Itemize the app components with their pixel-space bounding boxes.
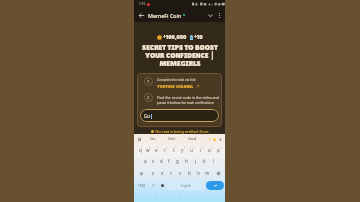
staticText: h — [185, 158, 188, 164]
staticText: e — [155, 147, 158, 153]
button[interactable]: Comma — [149, 181, 157, 190]
button[interactable]: l — [209, 155, 218, 167]
staticText: n — [197, 170, 200, 176]
staticText: MemeFi Coin — [148, 12, 182, 19]
staticText: 1 — [147, 79, 150, 84]
button[interactable]: English — [167, 181, 205, 190]
staticText: Go — [144, 113, 151, 119]
staticText: 6 — [184, 145, 186, 148]
button[interactable]: Go — [149, 135, 157, 143]
button[interactable]: p — [214, 144, 223, 155]
button[interactable]: t — [169, 144, 178, 155]
staticText: z — [152, 170, 155, 176]
button[interactable]: Voice input — [207, 137, 211, 141]
staticText: u — [190, 147, 193, 153]
staticText: 3 — [157, 145, 159, 148]
staticText: 8 — [202, 145, 204, 148]
button[interactable]: Expand — [206, 11, 215, 20]
button[interactable]: Emoji — [158, 181, 166, 190]
staticText: 2 — [147, 95, 150, 100]
button[interactable]: Recents — [152, 194, 159, 201]
staticText: SECRET TIPS TO BOOST YOUR CONFIDENCE | M… — [142, 43, 218, 68]
button[interactable]: k — [200, 155, 209, 167]
button[interactable]: Shift — [135, 167, 148, 179]
staticText: o — [208, 147, 211, 153]
staticText: 5 — [175, 145, 177, 148]
staticText: 4 — [166, 145, 168, 148]
button[interactable]: Backspace — [212, 167, 224, 179]
staticText: w — [146, 147, 150, 153]
staticText: 9 — [211, 145, 213, 148]
button[interactable]: m — [203, 167, 212, 179]
button[interactable]: f — [165, 155, 173, 167]
button[interactable]: h — [182, 155, 191, 167]
button[interactable]: d — [157, 155, 165, 167]
staticText: x — [161, 170, 164, 176]
staticText: j — [195, 158, 197, 164]
staticText: English — [181, 184, 192, 188]
button[interactable]: z — [148, 167, 158, 179]
staticText: 0 — [220, 145, 222, 148]
button[interactable]: j — [191, 155, 200, 167]
button[interactable]: c — [167, 167, 176, 179]
staticText: Go — [150, 136, 156, 142]
button[interactable]: g — [173, 155, 182, 167]
staticText: a — [144, 158, 147, 164]
staticText: v — [179, 170, 182, 176]
staticText: i — [200, 147, 202, 153]
button[interactable]: i — [196, 144, 205, 155]
staticText: s — [152, 158, 155, 164]
button[interactable]: Collapse keyboard — [218, 137, 222, 141]
button[interactable]: w — [144, 144, 152, 155]
button[interactable]: Home — [176, 194, 183, 201]
staticText: 2 — [149, 145, 151, 148]
button[interactable]: u — [187, 144, 196, 155]
button[interactable]: God — [187, 135, 198, 143]
staticText: m — [205, 170, 210, 176]
staticText: g — [176, 158, 179, 164]
staticText: +10 — [194, 34, 203, 40]
button[interactable]: Symbols — [135, 181, 148, 190]
button[interactable]: q — [136, 144, 144, 155]
staticText: 7 — [193, 145, 195, 148]
staticText: b — [188, 170, 191, 176]
button[interactable]: b — [185, 167, 194, 179]
button[interactable]: e — [152, 144, 160, 155]
button[interactable]: Go — [140, 109, 219, 122]
staticText: +100,000 — [163, 34, 187, 40]
button[interactable]: Got — [167, 135, 177, 143]
staticText: Find the secret code in the video and pa… — [157, 95, 219, 105]
button[interactable]: n — [194, 167, 203, 179]
button[interactable]: x — [158, 167, 167, 179]
staticText: y — [181, 147, 184, 153]
button[interactable]: v — [176, 167, 185, 179]
staticText: c — [170, 170, 173, 176]
staticText: d — [160, 158, 163, 164]
staticText: t — [173, 147, 175, 153]
button[interactable]: YOUTUBE CHANNEL — [157, 84, 199, 89]
button[interactable]: More options — [215, 11, 223, 19]
button[interactable]: s — [149, 155, 157, 167]
button[interactable]: o — [205, 144, 214, 155]
staticText: Got — [168, 136, 176, 142]
button[interactable]: r — [160, 144, 169, 155]
button[interactable]: Back — [201, 194, 208, 201]
staticText: f — [168, 158, 170, 164]
staticText: r — [164, 147, 166, 153]
button[interactable]: Enter — [206, 181, 224, 190]
staticText: God — [188, 136, 197, 142]
staticText: l — [213, 158, 215, 164]
staticText: 1 — [141, 145, 143, 148]
button[interactable]: a — [141, 155, 149, 167]
staticText: The task is being verified. Once — [155, 129, 209, 134]
staticText: Complete the task via link — [157, 78, 196, 82]
staticText: ?123 — [138, 184, 145, 188]
button[interactable]: Back — [137, 11, 146, 20]
staticText: q — [139, 147, 142, 153]
button[interactable]: y — [178, 144, 187, 155]
staticText: k — [203, 158, 206, 164]
staticText: YOUTUBE CHANNEL — [157, 84, 194, 89]
button[interactable]: Keyboard menu — [137, 137, 142, 142]
staticText: 1:15 — [139, 2, 146, 6]
staticText: p — [217, 147, 220, 153]
